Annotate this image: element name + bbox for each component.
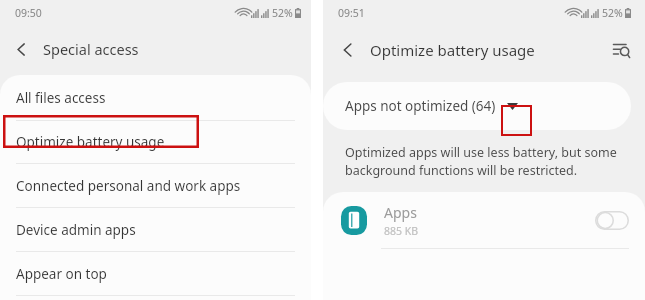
staticText: Optimize battery usage: [16, 133, 165, 151]
staticText: 09:51: [338, 6, 365, 20]
button[interactable]: Connected personal and work apps: [0, 164, 311, 207]
staticText: Optimized apps will use less battery, bu…: [345, 144, 617, 179]
button[interactable]: Appear on top: [0, 252, 311, 295]
staticText: 52%: [602, 6, 623, 20]
button[interactable]: Optimize battery usage: [0, 121, 311, 163]
staticText: Connected personal and work apps: [16, 177, 241, 195]
button[interactable]: Search: [601, 30, 641, 70]
button[interactable]: Back: [0, 26, 311, 72]
staticText: 52%: [272, 6, 293, 20]
button[interactable]: Back: [323, 26, 601, 74]
staticText: Device admin apps: [16, 221, 136, 239]
button[interactable]: Apps: [323, 192, 645, 248]
staticText: All files access: [16, 89, 106, 107]
button[interactable]: Apps not optimized (64): [323, 82, 631, 130]
staticText: 09:50: [15, 6, 42, 20]
button[interactable]: Device admin apps: [0, 208, 311, 251]
staticText: Apps not optimized (64): [345, 97, 496, 115]
staticText: Optimize battery usage: [370, 40, 535, 60]
button[interactable]: All files access: [0, 75, 311, 120]
staticText: Apps: [384, 203, 417, 222]
staticText: Appear on top: [16, 265, 107, 283]
staticText: 885 KB: [384, 224, 419, 238]
staticText: Special access: [43, 39, 139, 59]
